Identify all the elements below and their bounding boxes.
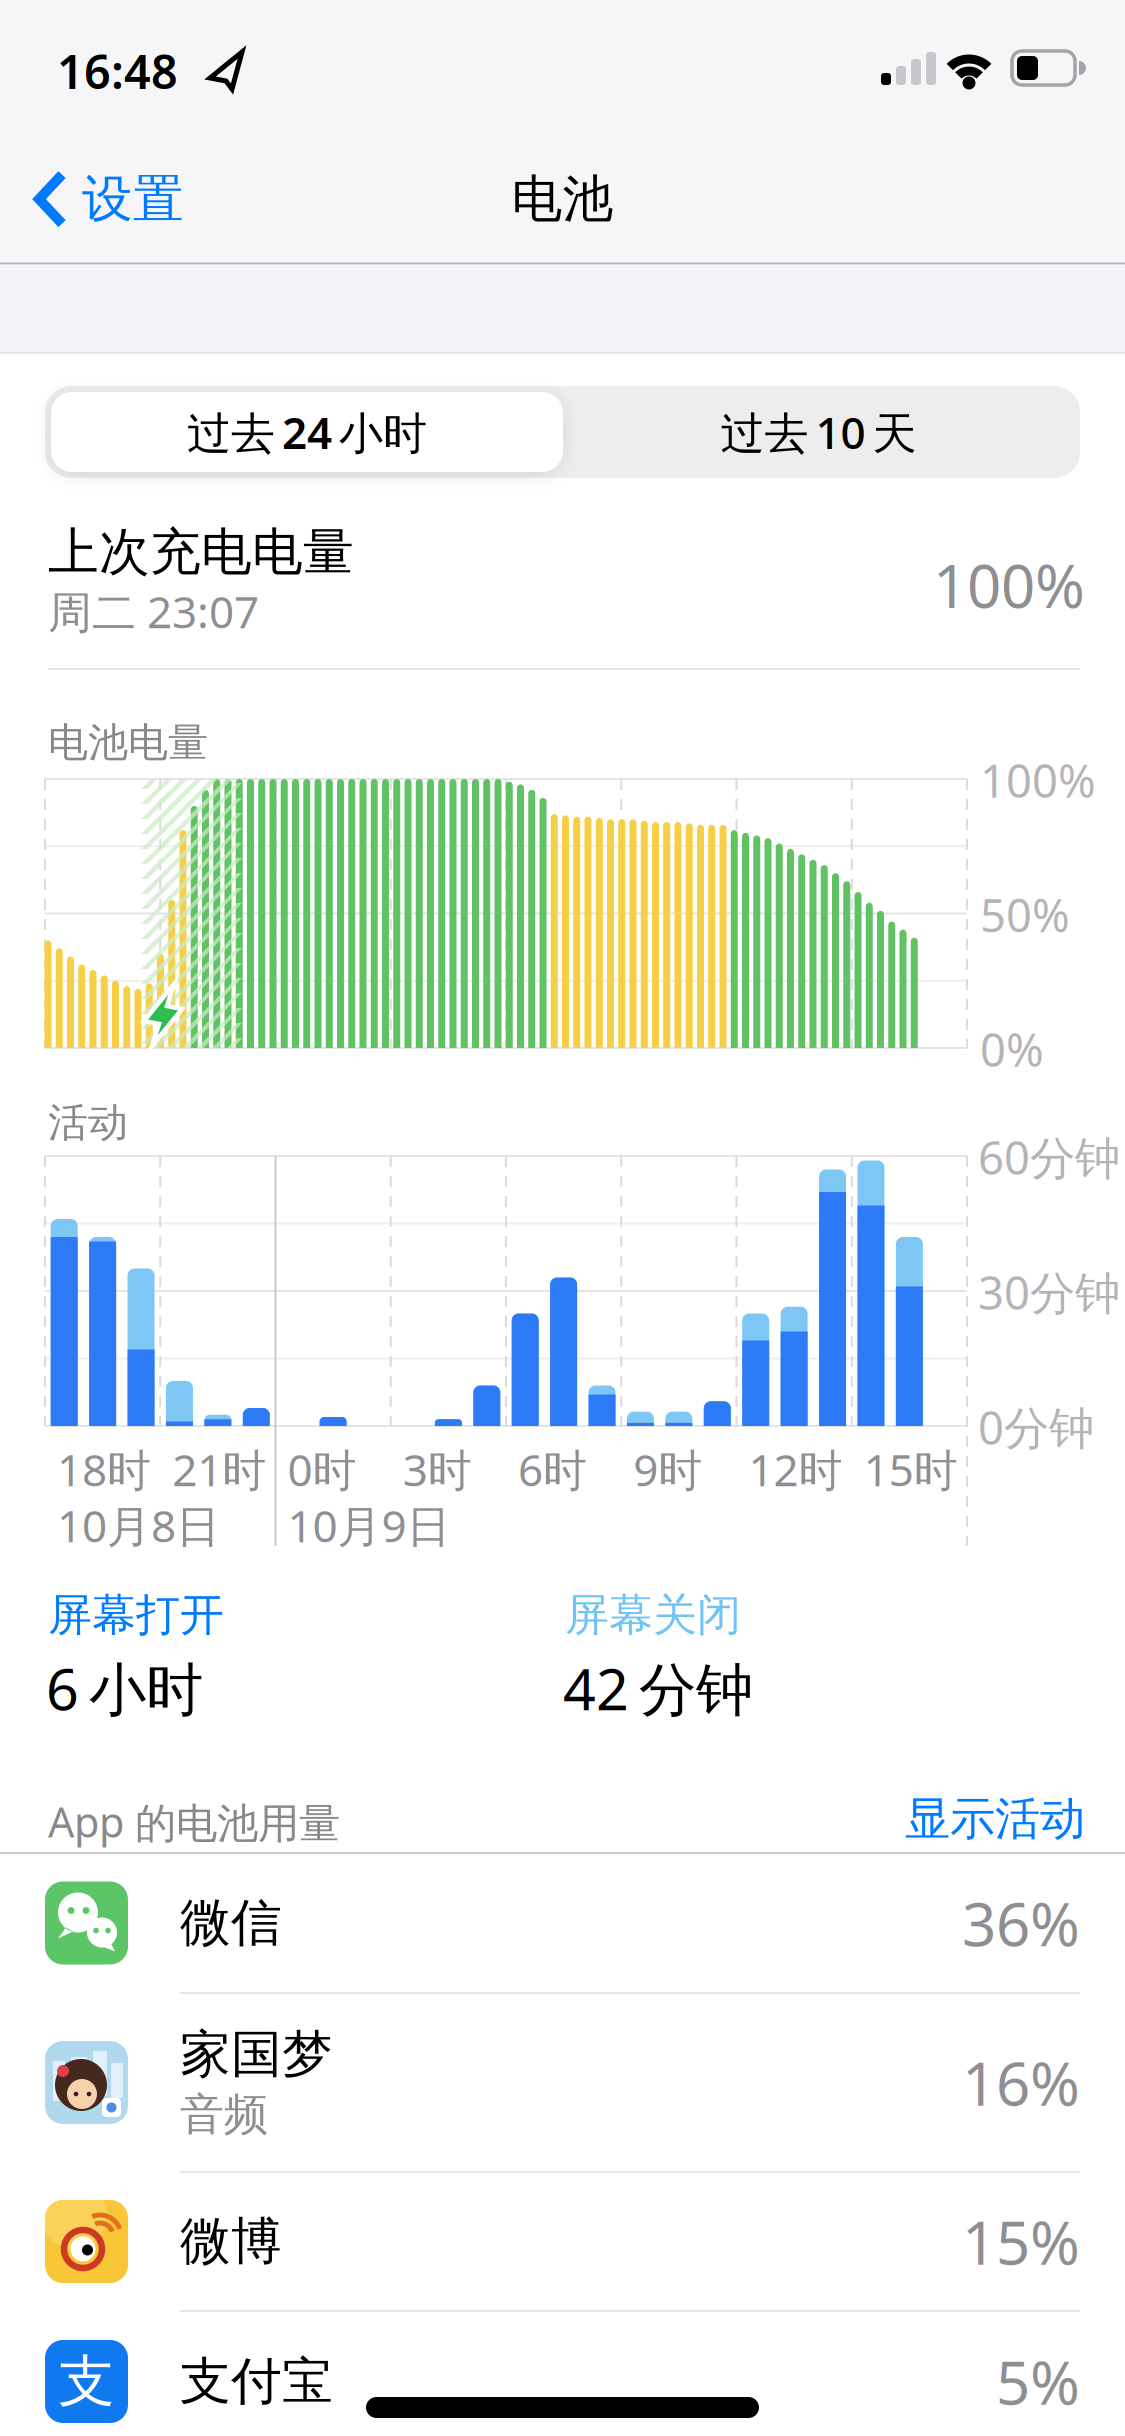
staticText: 电池 — [511, 168, 613, 230]
staticText: 21时 — [172, 1440, 266, 1498]
staticText: 18时 — [57, 1440, 151, 1498]
staticText: 6时 — [518, 1440, 587, 1498]
staticText: 家国梦 — [180, 2023, 333, 2086]
staticText: 上次充电电量 — [48, 521, 354, 583]
button[interactable]: 微信 — [45, 1853, 1080, 1993]
staticText: 电池电量 — [48, 718, 208, 767]
staticText: 0% — [980, 1019, 1044, 1079]
button[interactable]: 显示活动 — [905, 1791, 1085, 1847]
button[interactable]: 微博 — [45, 2172, 1080, 2311]
staticText: 周二 23:07 — [48, 582, 259, 640]
staticText: 6 小时 — [46, 1650, 203, 1726]
staticText: 过去 24 小时 — [187, 403, 427, 461]
staticText: 60分钟 — [978, 1127, 1120, 1187]
staticText: 音频 — [180, 2088, 268, 2142]
button[interactable]: 过去 24 小时 — [51, 392, 563, 472]
staticText: 微博 — [180, 2210, 282, 2273]
staticText: 15% — [962, 2202, 1080, 2281]
button[interactable]: 设置 — [36, 168, 184, 230]
staticText: 16% — [962, 2043, 1080, 2122]
staticText: 过去 10 天 — [720, 403, 916, 461]
staticText: 10月8日 — [57, 1496, 220, 1554]
staticText: 0时 — [287, 1440, 356, 1498]
button[interactable]: 支 — [45, 2311, 1080, 2436]
staticText: 3时 — [403, 1440, 472, 1498]
staticText: 微信 — [180, 1892, 282, 1954]
staticText: 支付宝 — [180, 2350, 333, 2413]
staticText: 0分钟 — [978, 1397, 1094, 1457]
button[interactable]: 家国梦 — [45, 1993, 1080, 2172]
staticText: 屏幕打开 — [48, 1588, 224, 1642]
staticText: 设置 — [82, 168, 184, 230]
staticText: 16:48 — [57, 40, 178, 102]
button[interactable]: 过去 10 天 — [563, 386, 1074, 478]
staticText: 36% — [962, 1883, 1080, 1963]
staticText: 50% — [980, 884, 1070, 945]
staticText: 100% — [933, 545, 1085, 625]
staticText: 15时 — [864, 1440, 958, 1498]
staticText: 12时 — [748, 1440, 842, 1498]
staticText: 5% — [996, 2342, 1080, 2421]
staticText: App 的电池用量 — [48, 1794, 340, 1849]
staticText: 屏幕关闭 — [565, 1588, 741, 1642]
staticText: 9时 — [633, 1440, 702, 1498]
staticText: 活动 — [48, 1098, 128, 1147]
staticText: 100% — [980, 750, 1096, 810]
staticText: 10月9日 — [287, 1496, 450, 1554]
staticText: 30分钟 — [978, 1262, 1120, 1322]
staticText: 显示活动 — [905, 1791, 1085, 1847]
staticText: 支 — [58, 2347, 114, 2416]
staticText: 42 分钟 — [563, 1650, 753, 1726]
